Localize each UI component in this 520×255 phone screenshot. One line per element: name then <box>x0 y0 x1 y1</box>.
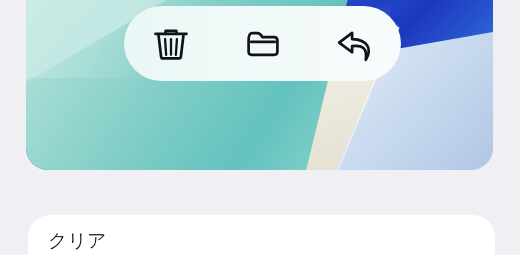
button[interactable] <box>26 0 493 170</box>
button[interactable]: クリア <box>28 215 495 255</box>
button[interactable]: Move to folder <box>217 6 309 81</box>
staticText: クリア <box>48 229 107 253</box>
button[interactable]: Delete <box>124 6 217 81</box>
button[interactable]: Reply <box>309 6 401 81</box>
